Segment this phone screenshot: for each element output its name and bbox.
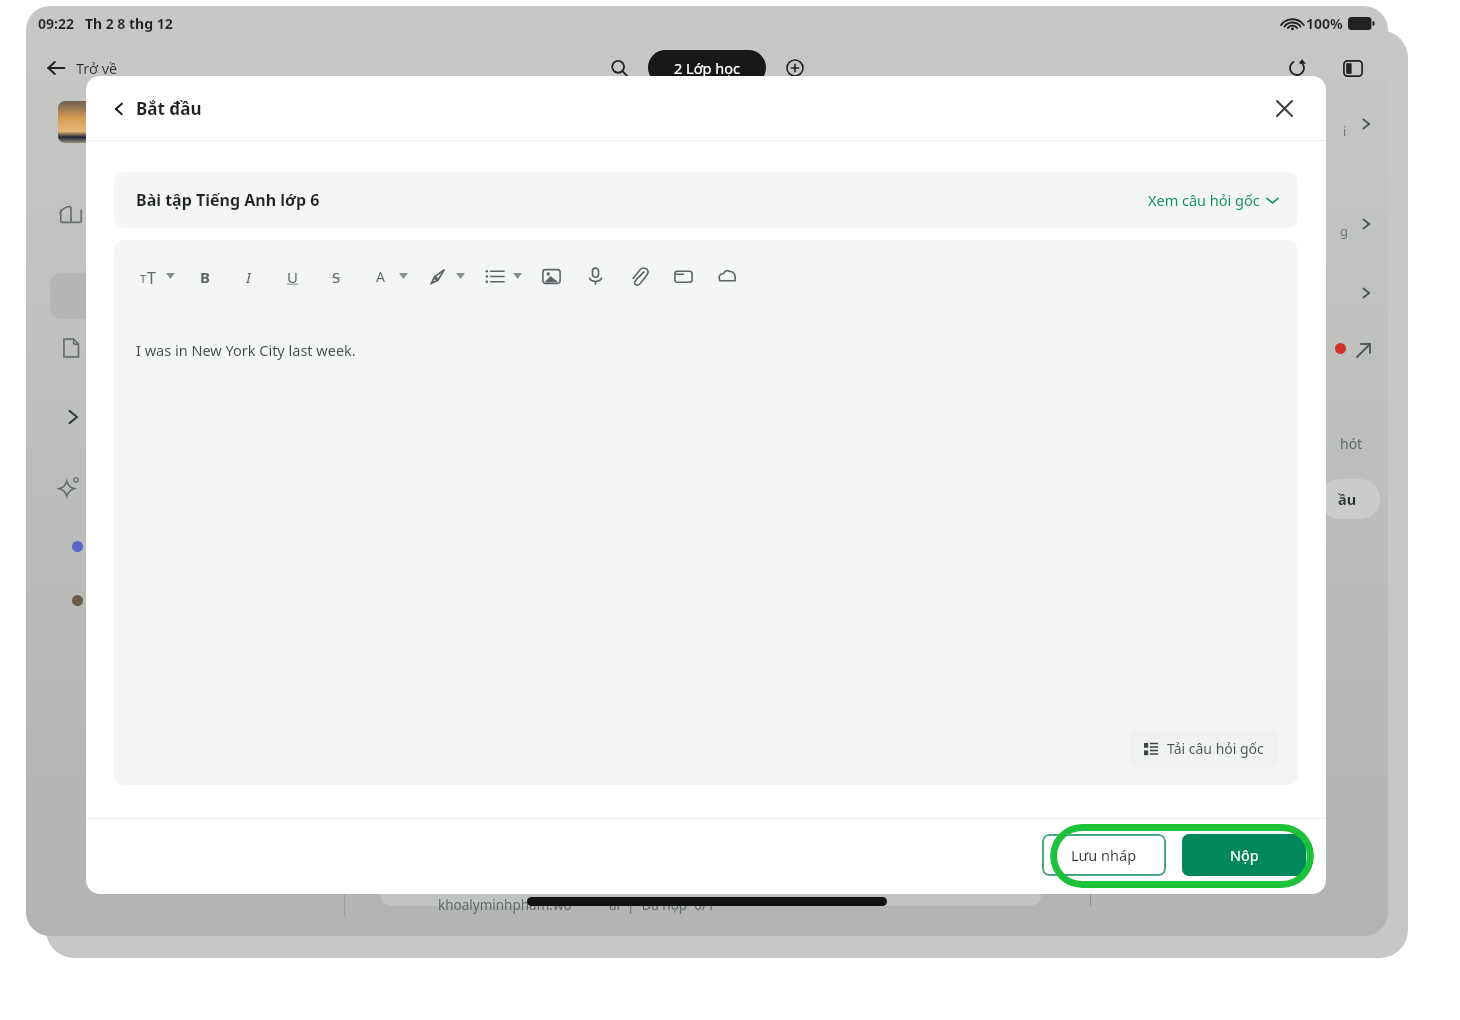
button[interactable]: Add — [778, 51, 812, 85]
staticText: khoalyminhpham.wo*****ai | Đã nộp 0/1 — [438, 896, 715, 914]
staticText: ầu — [1338, 489, 1357, 509]
button[interactable]: Tải câu hỏi gốc — [1130, 730, 1278, 767]
button[interactable]: 2 Lớp học — [648, 50, 766, 85]
button[interactable]: Voice — [580, 261, 610, 291]
staticText: 100% — [1306, 14, 1343, 33]
staticText: B — [200, 267, 210, 286]
staticText: i — [1343, 122, 1347, 140]
staticText: T — [147, 267, 156, 286]
staticText: g — [1340, 222, 1348, 240]
staticText: I was in New York City last week. — [136, 340, 356, 360]
button[interactable]: Sidebar — [1336, 51, 1370, 85]
button[interactable]: Bold — [189, 261, 219, 291]
button[interactable]: Reload — [1280, 51, 1314, 85]
button[interactable]: Highlight — [422, 261, 452, 291]
button[interactable]: Bắt đầu — [106, 91, 208, 126]
staticText: Xem câu hỏi gốc — [1148, 190, 1260, 210]
staticText: Bài tập Tiếng Anh lớp 6 — [136, 189, 320, 211]
button[interactable]: Folder — [668, 261, 698, 291]
staticText: Bắt đầu — [136, 97, 202, 120]
button[interactable]: Cloud — [712, 261, 742, 291]
button[interactable]: Trở về — [38, 52, 126, 84]
button[interactable]: Close — [1266, 90, 1302, 126]
staticText: 2 Lớp học — [674, 58, 740, 78]
staticText: I — [246, 267, 251, 286]
button[interactable]: Nộp — [1182, 834, 1306, 876]
staticText: Trở về — [76, 58, 118, 78]
button[interactable]: Attach — [624, 261, 654, 291]
button[interactable]: Text color — [365, 261, 395, 291]
button[interactable]: Lưu nháp — [1042, 834, 1166, 876]
staticText: 09:22 Th 2 8 thg 12 — [38, 14, 173, 33]
button[interactable]: Underline — [277, 261, 307, 291]
staticText: U — [287, 267, 298, 286]
staticText: Nộp — [1230, 845, 1259, 865]
button[interactable]: Search — [602, 51, 636, 85]
staticText: Tải câu hỏi gốc — [1167, 739, 1264, 758]
button[interactable]: Italic — [233, 261, 263, 291]
button[interactable]: Image — [536, 261, 566, 291]
button[interactable]: Xem câu hỏi gốc — [1142, 184, 1284, 216]
button[interactable]: Text size — [132, 261, 162, 291]
staticText: A — [376, 267, 385, 286]
staticText: T — [140, 271, 147, 286]
staticText: S — [332, 267, 341, 286]
staticText: Lưu nháp — [1071, 845, 1137, 865]
button[interactable]: List — [479, 261, 509, 291]
staticText: hót — [1340, 434, 1363, 453]
button[interactable]: Strikethrough — [321, 261, 351, 291]
